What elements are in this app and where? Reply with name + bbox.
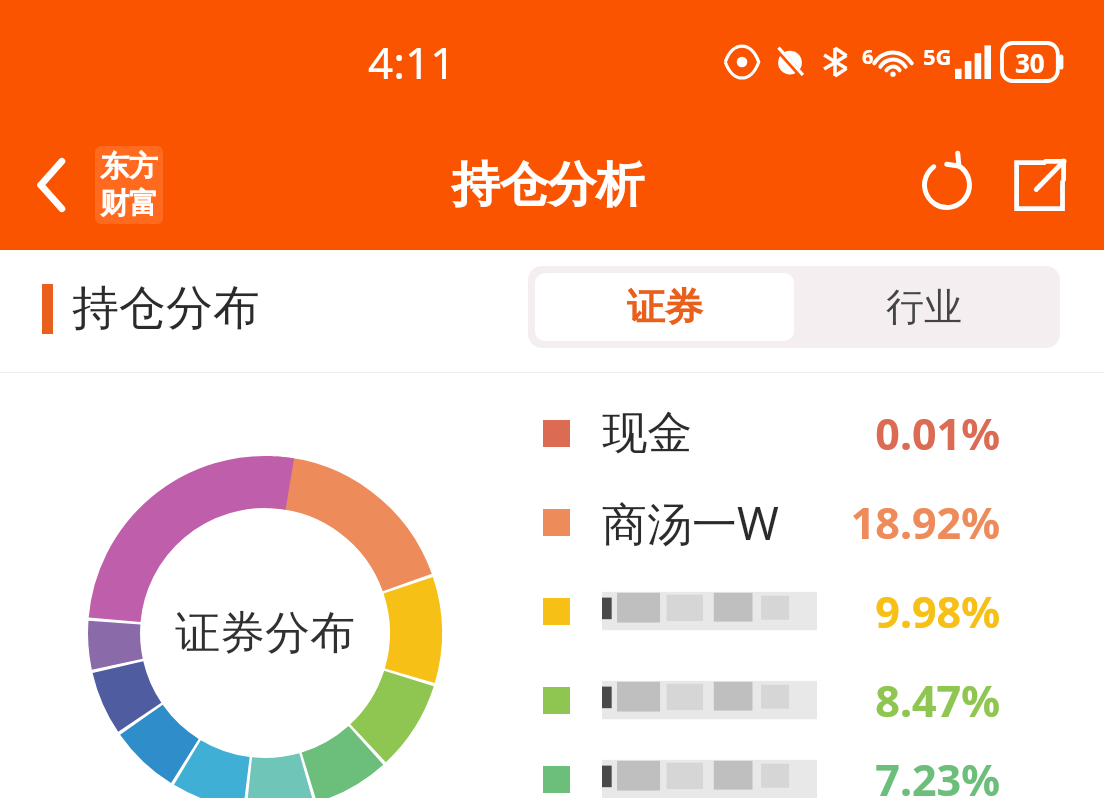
staticText: 18.92% — [850, 493, 1000, 552]
staticText: 持仓分布 — [72, 279, 260, 338]
staticText: 9.98% — [875, 582, 1000, 641]
staticText: 东方 — [100, 148, 158, 185]
staticText: 8.47% — [875, 671, 1000, 730]
staticText: 现金 — [602, 405, 692, 462]
button[interactable]: Refresh — [912, 150, 982, 220]
staticText: 行业 — [886, 283, 962, 331]
button[interactable]: Back — [26, 148, 76, 222]
button[interactable]: 8.47% — [543, 656, 1008, 745]
button[interactable]: Holdings distribution chart — [88, 456, 442, 798]
button[interactable]: 商汤一W — [543, 478, 1008, 567]
button[interactable]: 7.23% — [543, 745, 1008, 798]
staticText: 0.01% — [875, 404, 1000, 463]
button[interactable]: 现金 — [543, 389, 1008, 478]
button[interactable]: Share — [1004, 150, 1074, 220]
staticText: 商汤一W — [602, 492, 779, 553]
staticText: 30 — [1015, 45, 1045, 80]
staticText: 4:11 — [368, 32, 456, 92]
button[interactable]: 行业 — [794, 273, 1053, 341]
staticText: 5G — [923, 41, 952, 71]
staticText: 证券分布 — [175, 605, 355, 662]
staticText: 持仓分析 — [452, 155, 644, 215]
staticText: 7.23% — [875, 750, 1000, 798]
staticText: 6 — [862, 43, 874, 70]
staticText: 财富 — [100, 185, 158, 222]
staticText: 证券 — [627, 283, 703, 331]
button[interactable]: 证券 — [535, 273, 794, 341]
button[interactable]: East Money — [95, 146, 163, 224]
button[interactable]: 9.98% — [543, 567, 1008, 656]
